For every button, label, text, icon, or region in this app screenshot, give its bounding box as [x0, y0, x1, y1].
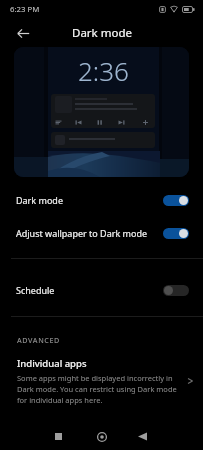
staticText: ADVANCED — [17, 335, 60, 345]
staticText: Some apps might be displayed incorrectly… — [17, 373, 181, 405]
staticText: Dark mode — [72, 25, 132, 41]
staticText: 6:23 PM — [10, 4, 40, 15]
button[interactable]: Recents — [44, 422, 73, 450]
staticText: Individual apps — [17, 357, 87, 370]
button[interactable]: Back — [128, 422, 157, 450]
staticText: 2:36 — [78, 53, 129, 88]
staticText: Schedule — [16, 284, 163, 296]
button[interactable]: Individual apps — [0, 352, 203, 410]
button[interactable]: Adjust wallpaper to Dark mode — [0, 216, 203, 250]
staticText: Dark mode — [16, 194, 163, 206]
button[interactable]: Back — [11, 21, 35, 45]
button[interactable]: Schedule — [0, 273, 203, 307]
staticText: Adjust wallpaper to Dark mode — [16, 227, 163, 239]
button[interactable]: Dark mode — [0, 183, 203, 217]
button[interactable]: Home — [87, 422, 116, 450]
